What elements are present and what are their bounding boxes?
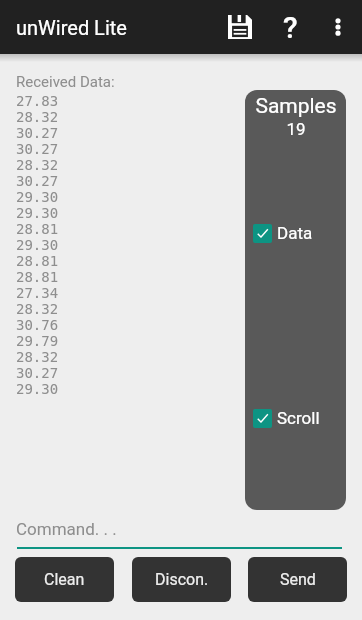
button[interactable]: Discon. <box>132 557 231 602</box>
button[interactable]: Help <box>266 3 314 51</box>
button[interactable]: More options <box>314 3 362 51</box>
staticText: 19 <box>286 119 306 139</box>
staticText: unWired Lite <box>16 16 127 39</box>
staticText: Clean <box>44 570 85 589</box>
staticText: Send <box>280 570 316 589</box>
staticText: ? <box>283 10 298 45</box>
button[interactable]: Send <box>248 557 347 602</box>
staticText: Command. . . <box>16 519 117 539</box>
staticText: Received Data: <box>16 73 115 91</box>
staticText: Scroll <box>277 408 320 428</box>
staticText: Data <box>277 223 313 243</box>
button[interactable]: Scroll <box>253 408 320 428</box>
button[interactable]: Save <box>216 3 264 51</box>
staticText: Discon. <box>155 570 209 589</box>
staticText: Samples <box>255 94 337 119</box>
staticText: 27.83 28.32 30.27 30.27 28.32 30.27 29.3… <box>16 93 59 397</box>
button[interactable]: Clean <box>15 557 114 602</box>
button[interactable]: Data <box>253 223 313 243</box>
